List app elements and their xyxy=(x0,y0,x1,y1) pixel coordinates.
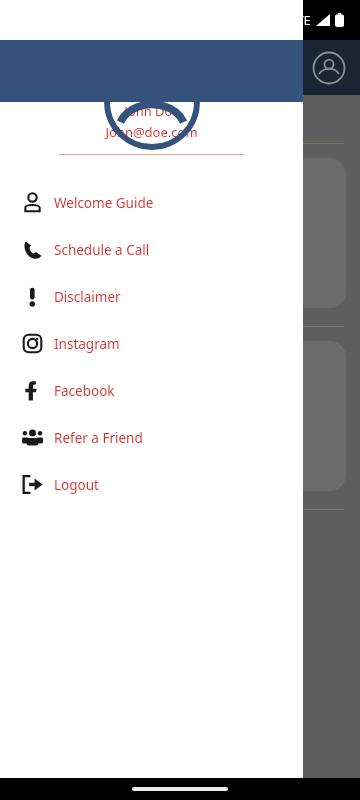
button[interactable]: Welcome Guide xyxy=(0,179,303,226)
staticText: LTE xyxy=(291,12,311,28)
staticText: Disclaimer xyxy=(54,288,121,306)
staticText: John Doe xyxy=(124,102,180,120)
staticText: Welcome Guide xyxy=(54,194,154,212)
button[interactable]: Disclaimer xyxy=(0,273,303,320)
staticText: Refer a Friend xyxy=(54,429,143,447)
staticText: Instagram xyxy=(54,335,120,353)
staticText: Logout xyxy=(54,476,99,494)
staticText: John@doe.com xyxy=(105,123,198,141)
button[interactable]: Facebook xyxy=(0,367,303,414)
button[interactable]: Profile xyxy=(312,51,346,85)
button[interactable]: Logout xyxy=(0,461,303,508)
button[interactable]: Refer a Friend xyxy=(0,414,303,461)
staticText: Schedule a Call xyxy=(54,241,150,259)
button[interactable]: Instagram xyxy=(0,320,303,367)
staticText: Facebook xyxy=(54,382,115,400)
button[interactable]: Schedule a Call xyxy=(0,226,303,273)
